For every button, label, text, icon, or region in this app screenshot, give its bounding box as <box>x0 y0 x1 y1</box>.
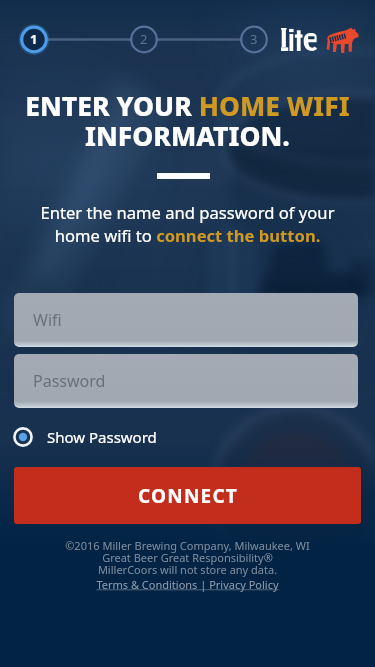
staticText: ©2016 Miller Brewing Company, Milwaukee,… <box>65 538 310 577</box>
staticText: Wifi <box>33 309 62 331</box>
button[interactable]: 1 <box>20 25 48 53</box>
other: Grizzly <box>326 27 359 53</box>
button[interactable]: Wifi <box>14 293 358 347</box>
staticText: CONNECT <box>138 483 238 509</box>
staticText: 3 <box>250 30 258 48</box>
button[interactable]: Show Password <box>11 424 157 449</box>
staticText: Password <box>33 370 106 392</box>
button[interactable]: Password <box>14 354 358 408</box>
staticText: Show Password <box>47 427 157 447</box>
staticText: Enter the name and password of your home… <box>0 201 375 247</box>
staticText: 2 <box>140 30 148 48</box>
other: Miller Lite <box>281 28 317 51</box>
staticText: 1 <box>30 30 38 48</box>
button[interactable]: 2 <box>130 25 158 53</box>
button[interactable]: 3 <box>240 25 268 53</box>
button[interactable]: Terms & Conditions | Privacy Policy <box>96 577 279 592</box>
staticText: ENTER YOUR HOME WIFI INFORMATION. <box>0 88 375 154</box>
button[interactable]: CONNECT <box>14 467 361 524</box>
